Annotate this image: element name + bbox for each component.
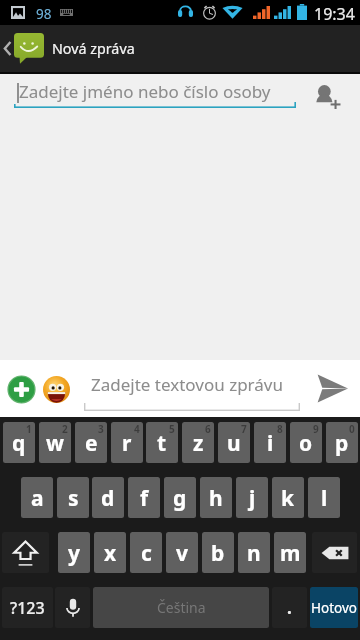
staticText: 9 xyxy=(313,422,319,436)
button[interactable]: h xyxy=(200,477,232,518)
staticText: p xyxy=(335,429,349,458)
staticText: i xyxy=(267,429,274,458)
staticText: n xyxy=(247,539,261,568)
staticText: u xyxy=(227,429,241,458)
staticText: 5 xyxy=(169,422,175,436)
staticText: d xyxy=(101,484,115,513)
staticText: c xyxy=(141,539,152,568)
button[interactable]: Delete xyxy=(312,532,357,573)
staticText: 7 xyxy=(241,422,247,436)
button[interactable]: Period xyxy=(272,587,307,628)
button[interactable]: z xyxy=(182,422,214,463)
button[interactable]: r xyxy=(111,422,143,463)
staticText: o xyxy=(299,429,313,458)
staticText: f xyxy=(140,484,149,513)
button[interactable]: b xyxy=(202,532,234,573)
staticText: j xyxy=(249,484,256,513)
staticText: r xyxy=(122,429,132,458)
staticText: 0 xyxy=(349,422,355,436)
button[interactable]: Shift xyxy=(2,532,49,573)
staticText: y xyxy=(68,539,80,568)
staticText: . xyxy=(287,596,292,619)
button[interactable]: q xyxy=(3,422,35,463)
button[interactable]: y xyxy=(58,532,90,573)
staticText: z xyxy=(193,429,204,458)
button[interactable]: d xyxy=(92,477,124,518)
button[interactable]: Voice input xyxy=(55,587,90,628)
staticText: 98 xyxy=(36,5,52,23)
button[interactable]: s xyxy=(57,477,89,518)
button[interactable]: n xyxy=(238,532,270,573)
button[interactable]: m xyxy=(274,532,306,573)
staticText: g xyxy=(173,484,187,513)
button[interactable]: v xyxy=(166,532,198,573)
button[interactable]: Send xyxy=(305,362,360,415)
button[interactable]: l xyxy=(308,477,340,518)
button[interactable]: c xyxy=(130,532,162,573)
button[interactable]: j xyxy=(236,477,268,518)
button[interactable]: w xyxy=(39,422,71,463)
staticText: 19:34 xyxy=(314,3,355,25)
staticText: Čeština xyxy=(157,598,206,617)
staticText: 1 xyxy=(26,422,32,436)
button[interactable]: f xyxy=(128,477,160,518)
staticText: ?123 xyxy=(10,597,45,619)
button[interactable]: i xyxy=(254,422,286,463)
button[interactable]: Hotovo xyxy=(310,587,358,628)
staticText: t xyxy=(157,429,167,458)
button[interactable]: Attach xyxy=(8,376,35,403)
other: Back xyxy=(4,42,11,55)
staticText: 4 xyxy=(134,422,140,436)
staticText: 6 xyxy=(205,422,211,436)
staticText: q xyxy=(12,429,26,458)
staticText: a xyxy=(31,484,44,513)
button[interactable]: x xyxy=(94,532,126,573)
staticText: 3 xyxy=(98,422,104,436)
staticText: m xyxy=(280,539,301,568)
button[interactable]: Symbols xyxy=(2,587,53,628)
button[interactable]: t xyxy=(146,422,178,463)
staticText: k xyxy=(281,484,295,513)
staticText: Nová zpráva xyxy=(52,39,135,58)
staticText: h xyxy=(209,484,223,513)
button[interactable]: Back xyxy=(0,25,360,72)
button[interactable]: Emoji xyxy=(43,376,70,403)
staticText: Zadejte jméno nebo číslo osoby xyxy=(19,80,271,103)
staticText: Zadejte textovou zprávu xyxy=(91,373,283,396)
button[interactable]: Add contact xyxy=(304,76,352,118)
staticText: 2 xyxy=(62,422,68,436)
button[interactable]: Zadejte textovou zprávu xyxy=(84,363,300,411)
staticText: x xyxy=(104,539,117,568)
button[interactable]: o xyxy=(290,422,322,463)
button[interactable]: a xyxy=(21,477,53,518)
button[interactable]: u xyxy=(218,422,250,463)
button[interactable]: e xyxy=(75,422,107,463)
staticText: v xyxy=(176,539,188,568)
button[interactable]: p xyxy=(326,422,358,463)
staticText: w xyxy=(46,429,64,458)
staticText: 8 xyxy=(277,422,283,436)
button[interactable]: g xyxy=(164,477,196,518)
staticText: s xyxy=(68,484,79,513)
staticText: b xyxy=(211,539,225,568)
button[interactable]: Space xyxy=(93,587,269,628)
staticText: l xyxy=(321,484,328,513)
staticText: Hotovo xyxy=(311,599,357,617)
staticText: e xyxy=(85,429,98,458)
button[interactable]: k xyxy=(272,477,304,518)
